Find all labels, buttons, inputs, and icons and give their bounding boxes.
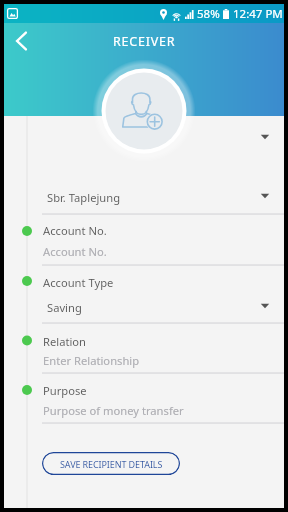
- staticText: Enter Relationship: [43, 353, 140, 368]
- staticText: Purpose of money transfer: [43, 403, 184, 418]
- staticText: Account No.: [43, 223, 107, 238]
- staticText: Sbr. Taplejung: [47, 190, 121, 205]
- staticText: 12:47 PM: [233, 6, 283, 22]
- staticText: SAVE RECIPIENT DETAILS: [60, 458, 163, 470]
- staticText: 58%: [197, 6, 220, 22]
- staticText: Relation: [43, 334, 87, 349]
- button[interactable]: SAVE RECIPIENT DETAILS: [42, 452, 180, 475]
- staticText: Account No.: [43, 244, 107, 259]
- staticText: Account Type: [43, 275, 114, 290]
- staticText: Purpose: [43, 383, 87, 398]
- button[interactable]: Back: [6, 26, 36, 56]
- button[interactable]: Add recipient photo: [89, 56, 199, 166]
- staticText: Saving: [47, 300, 82, 315]
- staticText: RECEIVER: [113, 33, 176, 50]
